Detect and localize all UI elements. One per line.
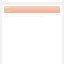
button[interactable]: Menu [2,2,62,5]
button[interactable] [4,6,60,13]
